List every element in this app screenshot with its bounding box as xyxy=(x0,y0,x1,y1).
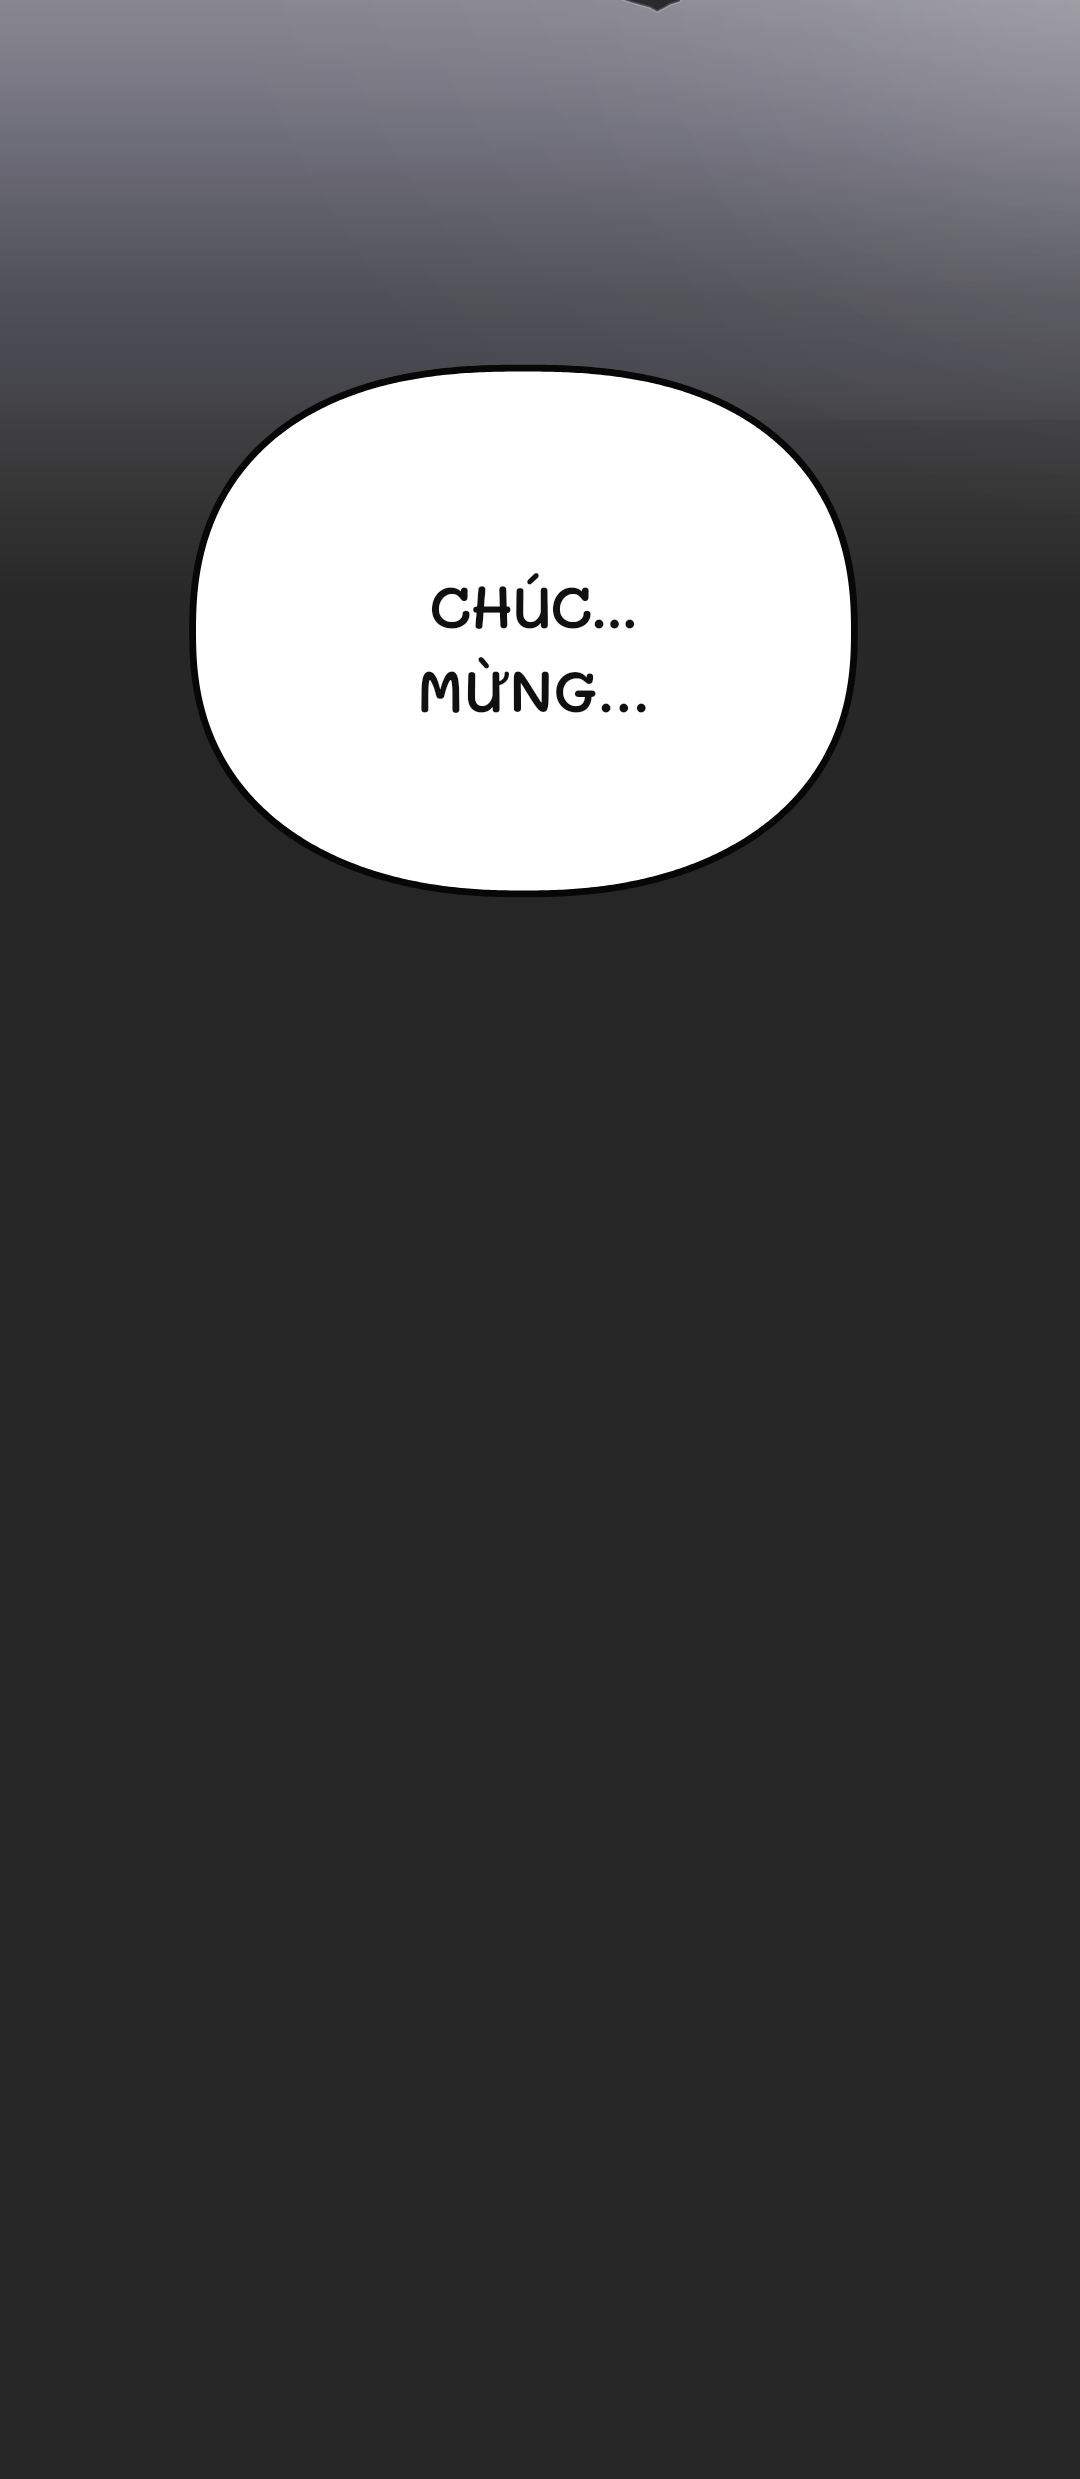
button[interactable]: CHÚC... MỪNG... xyxy=(196,372,851,891)
button[interactable]: Comic panel, tap to continue xyxy=(0,0,1080,2479)
